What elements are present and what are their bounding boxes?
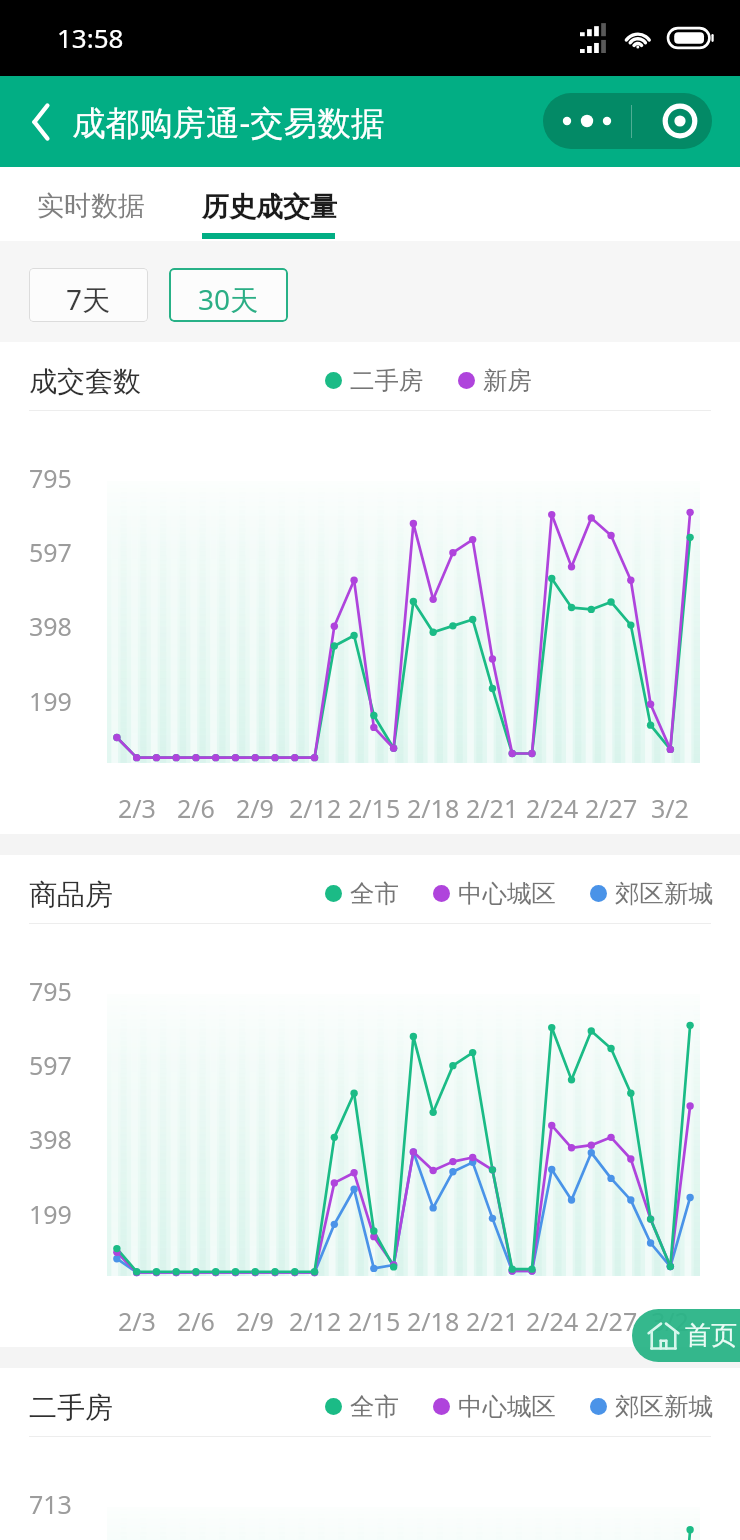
staticText: 2/6 bbox=[177, 1304, 215, 1338]
button[interactable]: 首页 bbox=[632, 1309, 740, 1362]
staticText: 二手房 bbox=[350, 365, 424, 396]
staticText: 成都购房通-交易数据 bbox=[72, 99, 385, 145]
staticText: 2/27 bbox=[585, 791, 638, 825]
button[interactable]: Back bbox=[6, 92, 66, 152]
staticText: 新房 bbox=[483, 365, 532, 396]
staticText: 2/9 bbox=[236, 791, 274, 825]
staticText: 2/18 bbox=[407, 1304, 460, 1338]
staticText: 2/15 bbox=[348, 791, 401, 825]
staticText: 全市 bbox=[350, 878, 399, 909]
button[interactable]: 历史成交量 bbox=[202, 190, 337, 224]
staticText: 商品房 bbox=[29, 877, 113, 912]
staticText: 实时数据 bbox=[37, 189, 145, 223]
staticText: 2/6 bbox=[177, 791, 215, 825]
staticText: 795 bbox=[29, 974, 72, 1008]
staticText: 199 bbox=[29, 684, 72, 718]
staticText: 2/24 bbox=[526, 1304, 579, 1338]
staticText: 成交套数 bbox=[29, 364, 141, 399]
staticText: 713 bbox=[29, 1487, 72, 1521]
staticText: 二手房 bbox=[29, 1390, 113, 1425]
staticText: 2/18 bbox=[407, 791, 460, 825]
staticText: 2/3 bbox=[118, 1304, 156, 1338]
button[interactable]: More options bbox=[543, 93, 631, 149]
staticText: 历史成交量 bbox=[202, 190, 337, 224]
staticText: 3/2 bbox=[651, 791, 689, 825]
staticText: 2/21 bbox=[466, 1304, 519, 1338]
staticText: 398 bbox=[29, 609, 72, 643]
staticText: 597 bbox=[29, 535, 72, 569]
staticText: 郊区新城 bbox=[615, 878, 713, 909]
button[interactable]: 30天 bbox=[169, 268, 288, 322]
button[interactable]: Close mini program bbox=[632, 93, 712, 149]
staticText: 597 bbox=[29, 1048, 72, 1082]
staticText: 郊区新城 bbox=[615, 1391, 713, 1422]
button[interactable]: 7天 bbox=[29, 268, 148, 322]
staticText: 398 bbox=[29, 1122, 72, 1156]
staticText: 13:58 bbox=[57, 20, 124, 55]
staticText: 7天 bbox=[66, 280, 111, 318]
staticText: 2/12 bbox=[289, 1304, 342, 1338]
staticText: 2/15 bbox=[348, 1304, 401, 1338]
staticText: 3/2 bbox=[651, 1304, 689, 1338]
staticText: 2/21 bbox=[466, 791, 519, 825]
staticText: 2/12 bbox=[289, 791, 342, 825]
staticText: 30天 bbox=[198, 280, 259, 318]
staticText: 首页 bbox=[685, 1319, 737, 1352]
staticText: 2/9 bbox=[236, 1304, 274, 1338]
staticText: 2/3 bbox=[118, 791, 156, 825]
button[interactable]: 实时数据 bbox=[37, 189, 145, 223]
staticText: 2/27 bbox=[585, 1304, 638, 1338]
staticText: 中心城区 bbox=[458, 1391, 556, 1422]
staticText: 795 bbox=[29, 461, 72, 495]
staticText: 199 bbox=[29, 1197, 72, 1231]
staticText: 2/24 bbox=[526, 791, 579, 825]
staticText: 中心城区 bbox=[458, 878, 556, 909]
staticText: 全市 bbox=[350, 1391, 399, 1422]
